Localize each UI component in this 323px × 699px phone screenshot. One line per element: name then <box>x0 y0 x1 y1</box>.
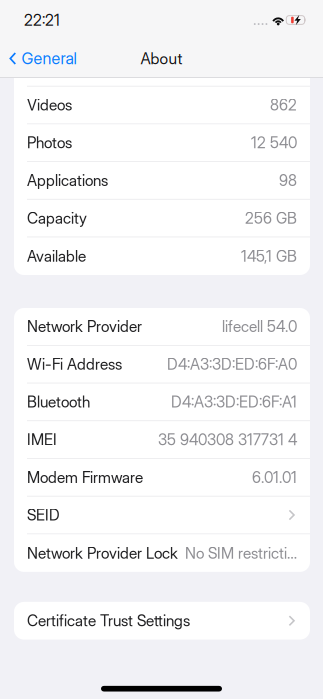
staticText: Photos <box>27 133 72 152</box>
button[interactable]: Photos <box>14 124 310 162</box>
button[interactable]: Bluetooth <box>14 383 310 421</box>
staticText: About <box>140 49 182 68</box>
button[interactable]: Available <box>14 237 310 275</box>
staticText: Songs <box>27 58 68 77</box>
staticText: SEID <box>27 506 60 524</box>
button[interactable]: General <box>0 41 86 75</box>
button[interactable]: Capacity <box>14 200 310 237</box>
staticText: Available <box>27 247 86 265</box>
button[interactable]: Network Provider <box>14 308 310 346</box>
staticText: D4:A3:3D:ED:6F:A0 <box>167 355 297 373</box>
staticText: General <box>22 49 77 68</box>
staticText: 145,1 GB <box>241 247 297 265</box>
button[interactable]: IMEI <box>14 421 310 459</box>
button[interactable]: Network Provider Lock <box>14 534 310 572</box>
staticText: 256 GB <box>245 209 297 227</box>
staticText: 98 <box>279 171 297 190</box>
staticText: Wi-Fi Address <box>27 355 122 373</box>
staticText: No SIM restricti… <box>185 544 297 562</box>
staticText: Bluetooth <box>27 393 90 411</box>
staticText: 6.01.01 <box>252 468 297 487</box>
button[interactable]: Certificate Trust Settings <box>14 602 310 640</box>
staticText: Network Provider Lock <box>27 544 178 562</box>
staticText: Modem Firmware <box>27 468 143 487</box>
button[interactable]: Videos <box>14 86 310 124</box>
staticText: Capacity <box>27 209 87 227</box>
staticText: D4:A3:3D:ED:6F:A1 <box>171 393 297 411</box>
staticText: 22:21 <box>24 11 60 29</box>
button[interactable]: SEID <box>14 496 310 534</box>
button[interactable]: Modem Firmware <box>14 459 310 496</box>
staticText: Network Provider <box>27 317 142 336</box>
staticText: 35 940308 317731 4 <box>158 430 297 449</box>
button[interactable]: Wi-Fi Address <box>14 346 310 383</box>
button[interactable]: Applications <box>14 162 310 200</box>
staticText: lifecell 54.0 <box>222 317 297 336</box>
staticText: 12 540 <box>251 133 297 152</box>
button[interactable]: Songs <box>14 49 310 86</box>
staticText: Applications <box>27 171 108 190</box>
staticText: Videos <box>27 96 72 114</box>
staticText: IMEI <box>27 430 57 449</box>
staticText: 862 <box>270 96 297 114</box>
staticText: Certificate Trust Settings <box>27 611 190 630</box>
